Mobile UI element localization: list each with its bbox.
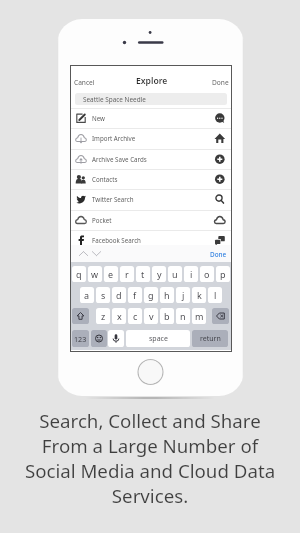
button[interactable]: Dictate xyxy=(108,330,124,347)
button[interactable]: Seattle Space Needle xyxy=(75,93,227,105)
button[interactable]: l xyxy=(208,287,222,303)
staticText: Archive Save Cards xyxy=(92,155,147,163)
staticText: Contacts xyxy=(92,175,118,183)
button[interactable]: q xyxy=(72,266,86,282)
button[interactable]: g xyxy=(144,287,158,303)
button[interactable]: u xyxy=(168,266,182,282)
staticText: f xyxy=(133,289,137,301)
staticText: p xyxy=(220,268,226,280)
button[interactable]: Done xyxy=(210,250,227,259)
staticText: a xyxy=(84,289,90,301)
staticText: w xyxy=(91,268,99,280)
button[interactable]: Done xyxy=(212,78,229,87)
button[interactable]: Facebook Search xyxy=(71,230,231,250)
staticText: i xyxy=(190,268,193,280)
staticText: y xyxy=(157,268,162,280)
staticText: Search, Collect and Share From a Large N… xyxy=(0,408,300,508)
staticText: Facebook Search xyxy=(92,236,141,244)
button[interactable]: x xyxy=(112,308,126,324)
button[interactable]: s xyxy=(96,287,110,303)
staticText: u xyxy=(172,268,178,280)
staticText: b xyxy=(164,310,170,322)
button[interactable]: o xyxy=(200,266,214,282)
button[interactable]: w xyxy=(88,266,102,282)
staticText: c xyxy=(133,310,138,322)
staticText: Seattle Space Needle xyxy=(83,95,146,104)
button[interactable]: Emoji xyxy=(91,330,107,347)
staticText: Twitter Search xyxy=(92,195,134,203)
staticText: d xyxy=(116,289,122,301)
staticText: l xyxy=(214,289,217,301)
button[interactable]: Backspace xyxy=(212,308,229,324)
button[interactable]: space xyxy=(126,330,190,347)
button[interactable]: return xyxy=(192,330,228,347)
button[interactable]: b xyxy=(160,308,174,324)
button[interactable]: t xyxy=(136,266,150,282)
button[interactable]: j xyxy=(176,287,190,303)
button[interactable]: r xyxy=(120,266,134,282)
staticText: h xyxy=(164,289,170,301)
button[interactable]: Twitter Search xyxy=(71,189,231,209)
button[interactable]: Previous field xyxy=(78,249,89,260)
staticText: 123 xyxy=(74,334,87,344)
button[interactable]: z xyxy=(96,308,110,324)
button[interactable]: v xyxy=(144,308,158,324)
staticText: g xyxy=(148,289,154,301)
button[interactable]: New xyxy=(71,108,231,128)
button[interactable]: k xyxy=(192,287,206,303)
button[interactable]: 123 xyxy=(72,330,89,347)
staticText: Pocket xyxy=(92,216,112,224)
staticText: m xyxy=(195,310,204,322)
button[interactable]: n xyxy=(176,308,190,324)
button[interactable]: c xyxy=(128,308,142,324)
staticText: Import Archive xyxy=(92,134,136,142)
button[interactable]: f xyxy=(128,287,142,303)
button[interactable]: m xyxy=(192,308,206,324)
button[interactable]: e xyxy=(104,266,118,282)
staticText: v xyxy=(149,310,154,322)
staticText: k xyxy=(197,289,202,301)
staticText: return xyxy=(200,334,221,344)
staticText: space xyxy=(149,334,168,344)
staticText: s xyxy=(101,289,106,301)
button[interactable]: Contacts xyxy=(71,169,231,189)
button[interactable]: h xyxy=(160,287,174,303)
staticText: e xyxy=(108,268,114,280)
button[interactable]: y xyxy=(152,266,166,282)
button[interactable]: Archive Save Cards xyxy=(71,149,231,169)
staticText: Explore xyxy=(136,75,168,87)
button[interactable]: Import Archive xyxy=(71,128,231,148)
button[interactable]: i xyxy=(184,266,198,282)
staticText: r xyxy=(125,268,129,280)
staticText: o xyxy=(204,268,210,280)
button[interactable]: Shift xyxy=(72,308,89,324)
button[interactable]: p xyxy=(216,266,230,282)
staticText: z xyxy=(101,310,106,322)
button[interactable]: a xyxy=(80,287,94,303)
staticText: x xyxy=(117,310,122,322)
staticText: n xyxy=(180,310,186,322)
button[interactable]: Next field xyxy=(91,249,102,260)
button[interactable]: Cancel xyxy=(74,78,95,87)
staticText: q xyxy=(76,268,82,280)
staticText: New xyxy=(92,114,105,122)
button[interactable]: Pocket xyxy=(71,210,231,230)
button[interactable]: d xyxy=(112,287,126,303)
staticText: j xyxy=(182,289,185,301)
staticText: t xyxy=(141,268,145,280)
